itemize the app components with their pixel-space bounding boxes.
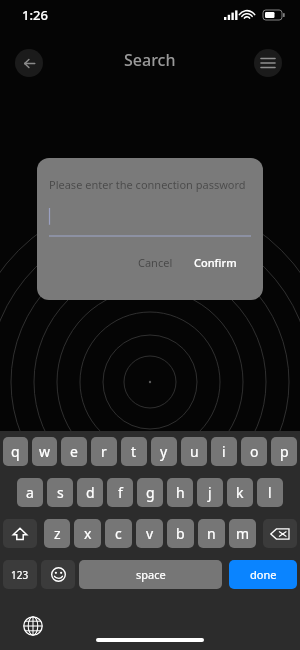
button[interactable]: c — [105, 519, 132, 548]
staticText: v — [146, 524, 154, 543]
button[interactable]: p — [271, 437, 297, 466]
button[interactable]: v — [136, 519, 163, 548]
button[interactable]: space — [79, 560, 222, 589]
staticText: n — [207, 524, 216, 543]
button[interactable]: a — [17, 478, 43, 507]
button[interactable]: j — [197, 478, 223, 507]
staticText: Cancel — [138, 255, 173, 270]
button[interactable]: 123 — [3, 560, 37, 589]
staticText: y — [160, 442, 168, 461]
staticText: b — [176, 524, 185, 543]
button[interactable]: i — [211, 437, 237, 466]
button[interactable]: o — [241, 437, 267, 466]
button[interactable]: t — [121, 437, 147, 466]
staticText: m — [236, 524, 250, 543]
button[interactable]: d — [77, 478, 103, 507]
staticText: h — [176, 483, 185, 502]
staticText: 123 — [11, 568, 29, 582]
button[interactable] — [49, 208, 251, 236]
staticText: k — [236, 483, 244, 502]
staticText: t — [131, 442, 137, 461]
staticText: s — [57, 483, 64, 502]
button[interactable]: Backspace — [263, 519, 297, 548]
button[interactable]: Confirm — [188, 251, 243, 274]
staticText: x — [84, 524, 92, 543]
button[interactable]: l — [257, 478, 283, 507]
button[interactable]: w — [32, 437, 57, 466]
button[interactable]: x — [74, 519, 101, 548]
staticText: r — [101, 442, 107, 461]
staticText: q — [11, 442, 20, 461]
staticText: j — [208, 483, 212, 502]
button[interactable]: y — [151, 437, 177, 466]
button[interactable]: q — [3, 437, 28, 466]
button[interactable]: b — [167, 519, 194, 548]
staticText: c — [115, 524, 122, 543]
staticText: u — [190, 442, 199, 461]
button[interactable]: Emoji — [41, 560, 75, 589]
staticText: g — [146, 483, 155, 502]
button[interactable]: Cancel — [132, 251, 179, 274]
button[interactable]: Shift — [3, 519, 37, 548]
staticText: Please enter the connection password — [49, 177, 246, 192]
staticText: z — [54, 524, 61, 543]
button[interactable]: n — [198, 519, 225, 548]
staticText: Confirm — [194, 255, 237, 270]
staticText: space — [136, 567, 166, 582]
button[interactable]: Change keyboard language — [22, 615, 44, 637]
button[interactable]: Menu — [254, 49, 282, 77]
button[interactable]: h — [167, 478, 193, 507]
button[interactable]: Back — [15, 49, 43, 77]
button[interactable]: k — [227, 478, 253, 507]
staticText: i — [222, 442, 226, 461]
staticText: w — [39, 442, 51, 461]
button[interactable]: done — [229, 560, 297, 589]
button[interactable]: z — [44, 519, 70, 548]
staticText: done — [250, 567, 277, 582]
button[interactable]: f — [107, 478, 133, 507]
staticText: p — [280, 442, 289, 461]
staticText: l — [268, 483, 272, 502]
staticText: o — [250, 442, 259, 461]
staticText: d — [86, 483, 95, 502]
button[interactable]: r — [91, 437, 117, 466]
staticText: a — [26, 483, 34, 502]
button[interactable]: u — [181, 437, 207, 466]
staticText: f — [118, 483, 123, 502]
button[interactable]: e — [61, 437, 87, 466]
button[interactable]: m — [229, 519, 256, 548]
button[interactable]: g — [137, 478, 163, 507]
staticText: 1:26 — [22, 6, 48, 24]
staticText: e — [70, 442, 78, 461]
button[interactable]: s — [47, 478, 73, 507]
staticText: Search — [124, 49, 176, 71]
